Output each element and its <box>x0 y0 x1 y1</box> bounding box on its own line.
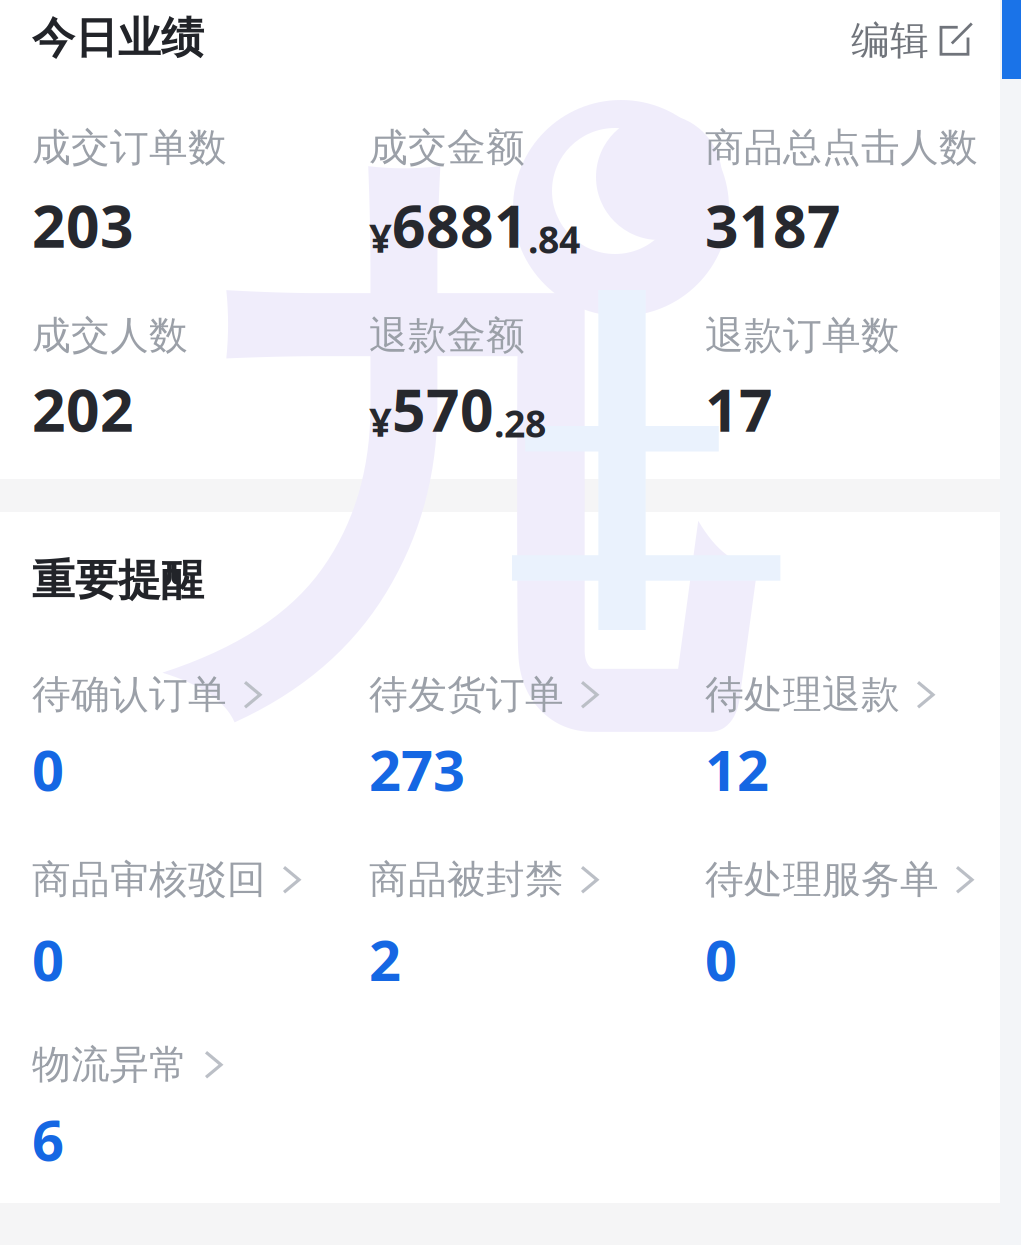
staticText: 待确认订单 <box>32 671 227 718</box>
staticText: 九 <box>170 120 743 824</box>
staticText: 0 <box>32 732 64 806</box>
staticText: .28 <box>494 398 546 448</box>
button[interactable]: 商品被封禁 <box>369 856 597 903</box>
staticText: 成交订单数 <box>32 124 227 171</box>
button[interactable]: 待发货订单 <box>369 671 597 718</box>
staticText: 570 <box>392 370 494 448</box>
staticText: 12 <box>705 732 769 806</box>
staticText: 17 <box>705 370 773 448</box>
staticText: 2 <box>369 922 401 996</box>
staticText: 成交人数 <box>32 312 188 359</box>
staticText: 退款金额 <box>369 312 525 359</box>
staticText: 待处理服务单 <box>705 856 939 903</box>
button[interactable]: 编辑 <box>851 17 968 64</box>
button[interactable]: 待处理退款 <box>705 671 933 718</box>
staticText: 成交金额 <box>369 124 525 171</box>
staticText: 今日业绩 <box>32 12 204 64</box>
staticText: 待处理退款 <box>705 671 900 718</box>
button[interactable]: 商品审核驳回 <box>32 856 299 903</box>
button[interactable]: 物流异常 <box>32 1041 221 1088</box>
staticText: 商品被封禁 <box>369 856 564 903</box>
staticText: 商品审核驳回 <box>32 856 266 903</box>
staticText: 273 <box>369 732 465 806</box>
staticText: .84 <box>528 214 580 264</box>
button[interactable]: 待处理服务单 <box>705 856 972 903</box>
staticText: 6 <box>32 1102 64 1176</box>
staticText: 0 <box>32 922 64 996</box>
staticText: 203 <box>32 186 134 264</box>
staticText: 商品总点击人数 <box>705 124 978 171</box>
staticText: 退款订单数 <box>705 312 900 359</box>
staticText: 202 <box>32 370 134 448</box>
staticText: ¥ <box>369 211 392 264</box>
staticText: ¥ <box>369 395 392 448</box>
button[interactable]: 待确认订单 <box>32 671 260 718</box>
staticText: 6881 <box>392 186 528 264</box>
staticText: 待发货订单 <box>369 671 564 718</box>
staticText: 物流异常 <box>32 1041 188 1088</box>
staticText: 0 <box>705 922 737 996</box>
staticText: 3187 <box>705 186 841 264</box>
staticText: 重要提醒 <box>32 554 204 606</box>
staticText: 编辑 <box>851 17 929 64</box>
